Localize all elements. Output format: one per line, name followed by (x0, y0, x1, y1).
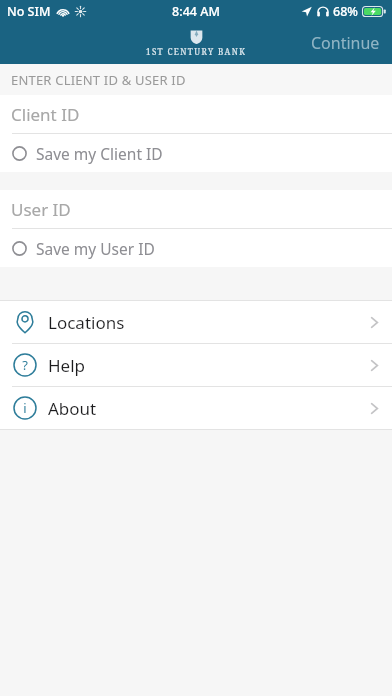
staticText: ? (22, 356, 28, 374)
button[interactable]: About (0, 387, 392, 429)
button[interactable]: Help (0, 344, 392, 386)
staticText: ENTER CLIENT ID & USER ID (11, 71, 186, 89)
button[interactable]: Save my User ID (0, 229, 392, 267)
staticText: Save my Client ID (36, 143, 163, 164)
staticText: User ID (11, 198, 71, 221)
staticText: No SIM (7, 3, 51, 20)
staticText: Client ID (11, 103, 80, 126)
staticText: i (23, 399, 27, 417)
staticText: 8:44 AM (172, 3, 220, 20)
button[interactable]: Continue (299, 24, 392, 62)
staticText: 68% (333, 3, 358, 20)
staticText: Continue (311, 32, 380, 54)
button[interactable]: Client ID (0, 95, 392, 133)
other: Help (13, 353, 37, 377)
button[interactable]: Locations (0, 301, 392, 343)
button[interactable]: User ID (0, 190, 392, 228)
staticText: Help (48, 354, 86, 377)
staticText: Locations (48, 311, 125, 334)
staticText: Save my User ID (36, 238, 155, 259)
staticText: About (48, 397, 97, 420)
button[interactable]: Save my Client ID (0, 134, 392, 172)
other: About (13, 396, 37, 420)
staticText: 1ST CENTURY BANK (146, 46, 247, 57)
other: Locations (13, 310, 37, 334)
